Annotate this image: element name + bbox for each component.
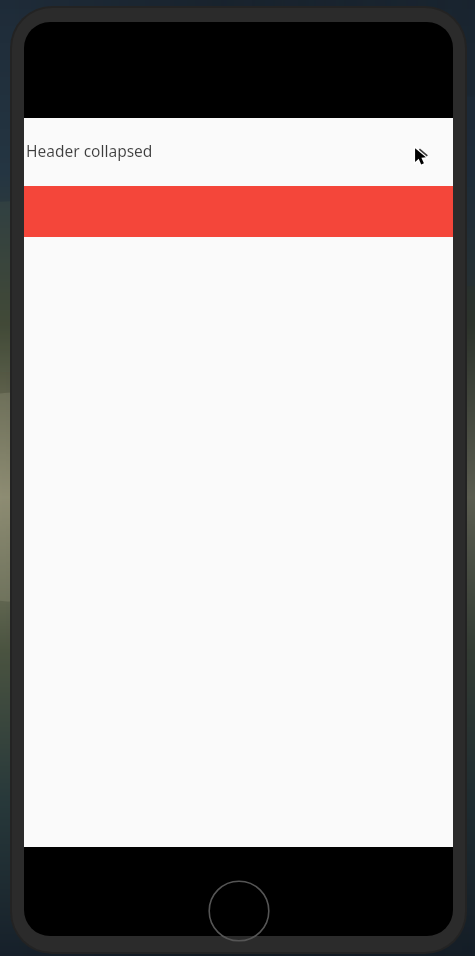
- staticText: Header collapsed: [26, 140, 153, 161]
- button[interactable]: Header collapsed: [24, 118, 453, 186]
- button[interactable]: Home: [208, 880, 270, 942]
